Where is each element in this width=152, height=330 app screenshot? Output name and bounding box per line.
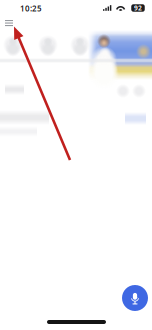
button[interactable]: Voice input [122, 285, 148, 311]
staticText: 10:25 [20, 3, 42, 14]
staticText: 92 [134, 4, 142, 12]
button[interactable]: Menu [1, 16, 18, 31]
